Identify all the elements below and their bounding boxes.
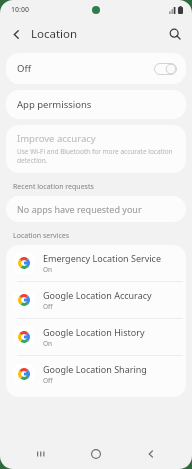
button[interactable]: Google Location History [6,319,186,355]
button[interactable]: Recents [27,440,55,468]
staticText: Off [43,376,53,385]
staticText: Use Wi-Fi and Bluetooth for more accurat… [17,147,175,165]
button[interactable]: Back [4,22,28,46]
staticText: Off [17,62,31,75]
button[interactable]: App permissions [6,90,186,119]
staticText: Location [31,26,78,42]
button[interactable]: Google Location Accuracy [6,282,186,318]
staticText: App permissions [17,98,92,111]
staticText: On [43,339,53,348]
staticText: Google Location History [43,326,145,338]
button[interactable]: Improve accuracy [6,125,186,173]
staticText: Location services [13,231,70,241]
button[interactable]: Home [82,440,110,468]
staticText: Recent location requests [13,182,94,192]
button[interactable]: Back [137,440,165,468]
staticText: Improve accuracy [17,132,96,145]
button[interactable]: Search [163,22,187,46]
staticText: Google Location Accuracy [43,289,152,301]
staticText: Off [43,302,53,311]
button[interactable]: Emergency Location Service [6,245,186,281]
staticText: Google Location Sharing [43,363,147,375]
staticText: Emergency Location Service [43,252,162,264]
staticText: No apps have requested your location.. [17,203,180,215]
button[interactable]: Off [6,53,186,84]
button[interactable]: Google Location Sharing [6,356,186,392]
staticText: On [43,265,53,274]
staticText: 10:00 [11,5,29,15]
